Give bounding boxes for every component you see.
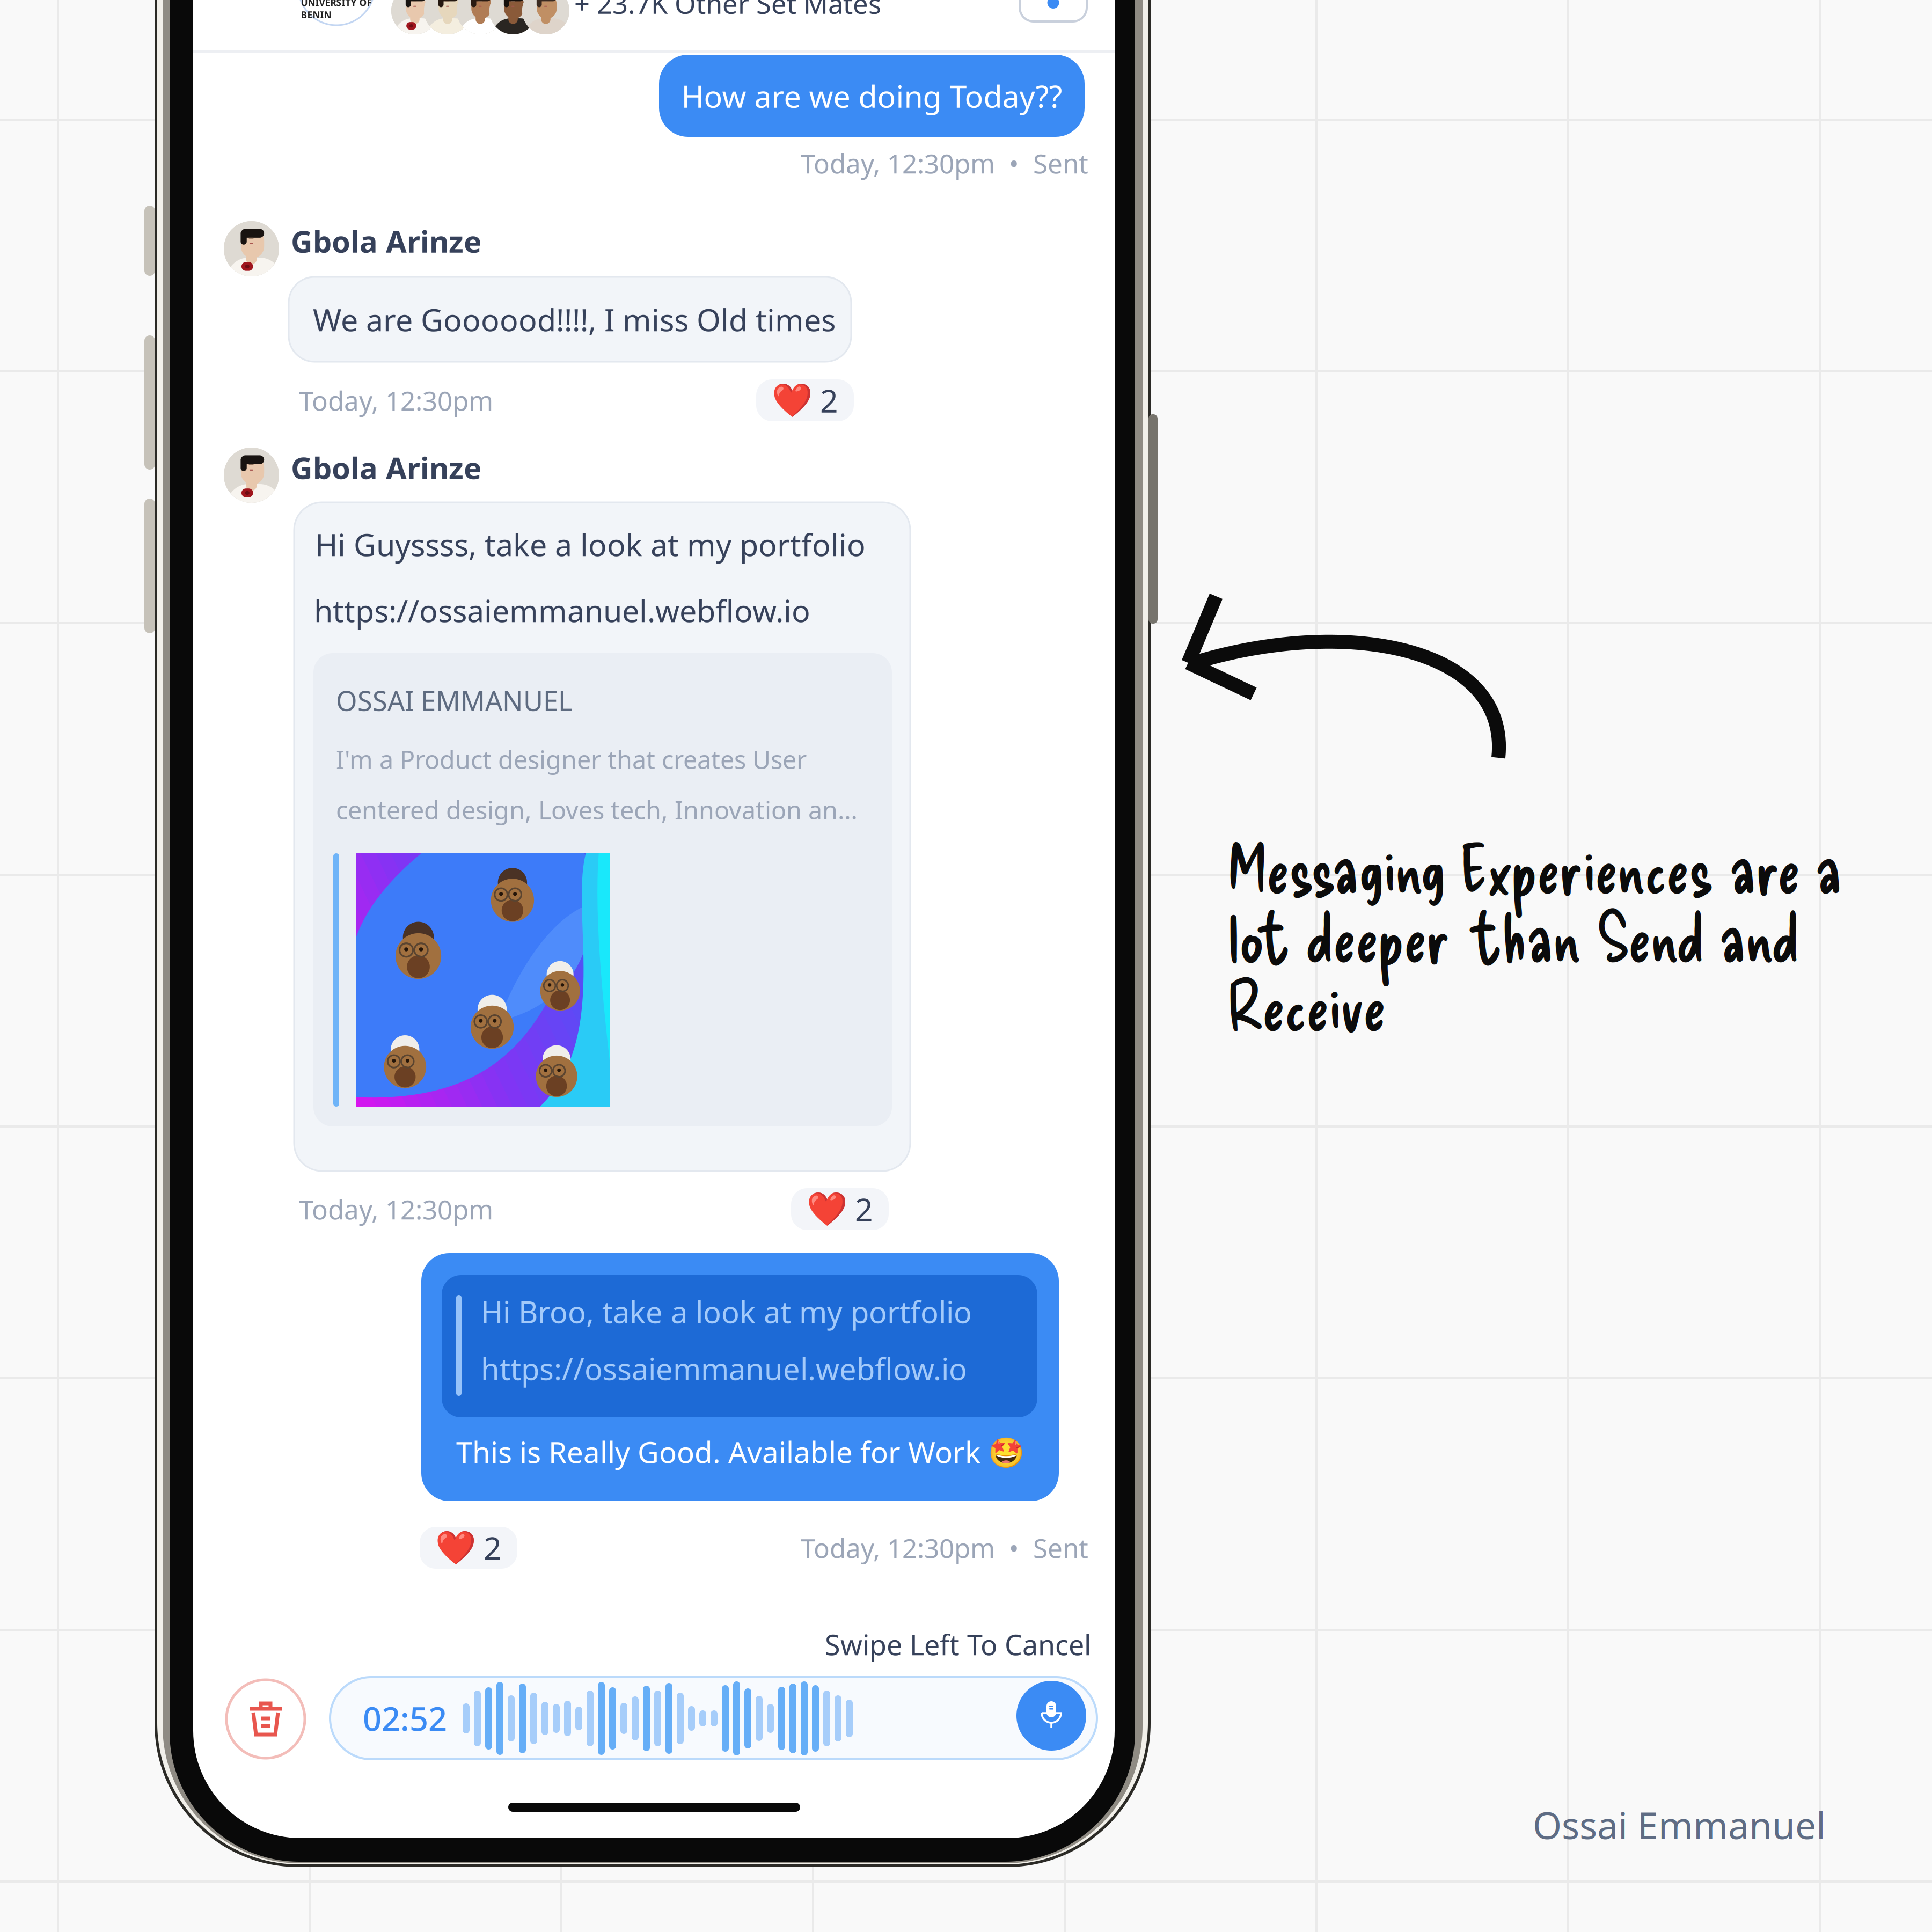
staticText: Hi Guyssss, take a look at my portfolio (315, 524, 866, 565)
staticText: Swipe Left To Cancel (825, 1626, 1091, 1663)
staticText: 2 (855, 1188, 873, 1230)
button[interactable]: 2 heart reactions (193, 0, 291, 42)
staticText: lot deeper than Send and (1228, 895, 1799, 976)
staticText: How are we doing Today?? (681, 75, 1062, 116)
staticText: ❤️ (772, 382, 813, 419)
button[interactable]: 2 heart reactions (193, 0, 291, 42)
staticText: Gbola Arinze (291, 447, 481, 487)
staticText: This is Really Good. Available for Work … (456, 1432, 1024, 1471)
button[interactable]: Group details (193, 0, 260, 82)
staticText: UNIVERSITY OF BENIN (301, 0, 372, 21)
staticText: + 23.7K Other Set Mates (574, 0, 881, 21)
staticText: centered design, Loves tech, Innovation … (336, 793, 858, 826)
staticText: Today, 12:30pm (299, 383, 493, 418)
staticText: ❤️ (807, 1190, 847, 1228)
button[interactable]: Delete recording (193, 0, 272, 78)
button[interactable]: Open ossaiemmanuel.webflow.io (193, 0, 772, 473)
staticText: OSSAI EMMANUEL (336, 682, 573, 718)
staticText: ❤️ (435, 1529, 476, 1567)
staticText: Today, 12:30pm • Sent (801, 146, 1088, 181)
staticText: https://ossaiemmanuel.webflow.io (481, 1349, 967, 1388)
button[interactable] (193, 0, 831, 248)
staticText: Receive (1228, 964, 1386, 1045)
staticText: We are Goooood!!!!, I miss Old times (313, 299, 836, 340)
staticText: Gbola Arinze (291, 221, 481, 261)
staticText: Today, 12:30pm • Sent (801, 1530, 1088, 1565)
button[interactable]: 2 heart reactions (193, 0, 291, 42)
button[interactable]: How are we doing Today?? (193, 0, 619, 82)
staticText: I'm a Product designer that creates User (336, 743, 807, 776)
staticText: Ossai Emmanuel (1533, 1800, 1826, 1849)
staticText: https://ossaiemmanuel.webflow.io (314, 590, 810, 631)
staticText: Messaging Experiences are a (1228, 826, 1842, 907)
staticText: 02:52 (363, 1696, 447, 1740)
staticText: Today, 12:30pm (299, 1192, 493, 1227)
staticText: Hi Broo, take a look at my portfolio (481, 1292, 972, 1332)
staticText: 2 (484, 1527, 502, 1569)
button[interactable]: We are Goooood!!!!, I miss Old times (193, 0, 756, 85)
staticText: 2 (820, 379, 838, 421)
button[interactable]: Record voice message (193, 0, 263, 70)
